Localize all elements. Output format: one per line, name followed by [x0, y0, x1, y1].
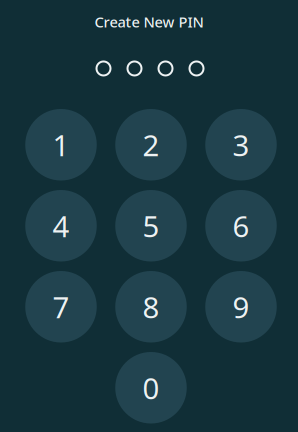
staticText: 8: [142, 287, 159, 326]
staticText: 7: [52, 287, 69, 326]
staticText: 3: [232, 125, 249, 164]
button[interactable]: 3: [205, 109, 277, 180]
button[interactable]: 2: [115, 109, 187, 180]
button[interactable]: 6: [205, 190, 277, 261]
button[interactable]: 0: [115, 352, 187, 423]
button[interactable]: 1: [25, 109, 97, 180]
staticText: 2: [142, 125, 159, 164]
button[interactable]: 7: [25, 271, 97, 342]
button[interactable]: 5: [115, 190, 187, 261]
staticText: 0: [142, 368, 159, 407]
staticText: 4: [52, 206, 69, 245]
button[interactable]: 4: [25, 190, 97, 261]
button[interactable]: 9: [205, 271, 277, 342]
staticText: 1: [52, 125, 69, 164]
staticText: Create New PIN: [94, 12, 203, 31]
button[interactable]: 8: [115, 271, 187, 342]
staticText: 9: [232, 287, 249, 326]
staticText: 6: [232, 206, 249, 245]
staticText: 5: [142, 206, 159, 245]
